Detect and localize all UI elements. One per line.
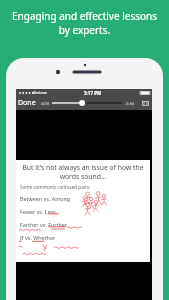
staticText: Done [18, 98, 36, 108]
staticText: -5:04 [125, 101, 135, 106]
staticText: 4:00 [41, 101, 49, 106]
staticText: If vs. Whether [20, 234, 56, 247]
staticText: Engaging and effective lessons by expert… [8, 9, 161, 37]
button[interactable]: Full screen [138, 96, 152, 110]
staticText: Verizon [33, 90, 48, 95]
staticText: Fewer vs. Less [20, 208, 56, 221]
button[interactable]: Done [16, 96, 38, 110]
staticText: Between vs. Among [20, 195, 71, 208]
staticText: 5:17 PM [84, 90, 102, 96]
staticText: Farther vs. Further [20, 221, 68, 234]
staticText: Some commonly confused pairs: [20, 184, 91, 190]
staticText: But it's not always an issue of how the … [19, 163, 147, 181]
